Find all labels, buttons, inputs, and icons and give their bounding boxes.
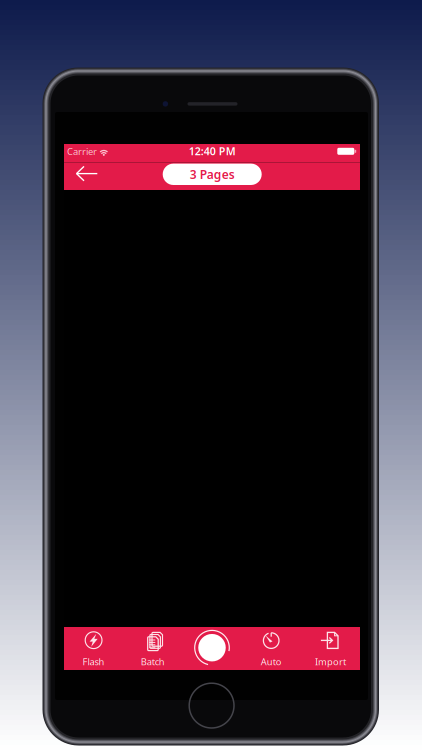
staticText: Batch bbox=[141, 655, 165, 668]
button[interactable]: Back bbox=[70, 161, 104, 187]
staticText: Carrier bbox=[67, 145, 97, 157]
staticText: 12:40 PM bbox=[189, 144, 236, 158]
button[interactable]: 3 Pages bbox=[163, 164, 262, 185]
button[interactable]: Import bbox=[301, 627, 360, 670]
button[interactable]: Shutter bbox=[182, 627, 242, 670]
staticText: Import bbox=[315, 655, 346, 668]
staticText: Auto bbox=[261, 655, 282, 668]
staticText: Flash bbox=[83, 655, 105, 668]
button[interactable]: Auto bbox=[242, 627, 301, 670]
button[interactable]: Batch bbox=[123, 627, 182, 670]
button[interactable]: Flash bbox=[64, 627, 123, 670]
staticText: 3 Pages bbox=[190, 166, 235, 182]
